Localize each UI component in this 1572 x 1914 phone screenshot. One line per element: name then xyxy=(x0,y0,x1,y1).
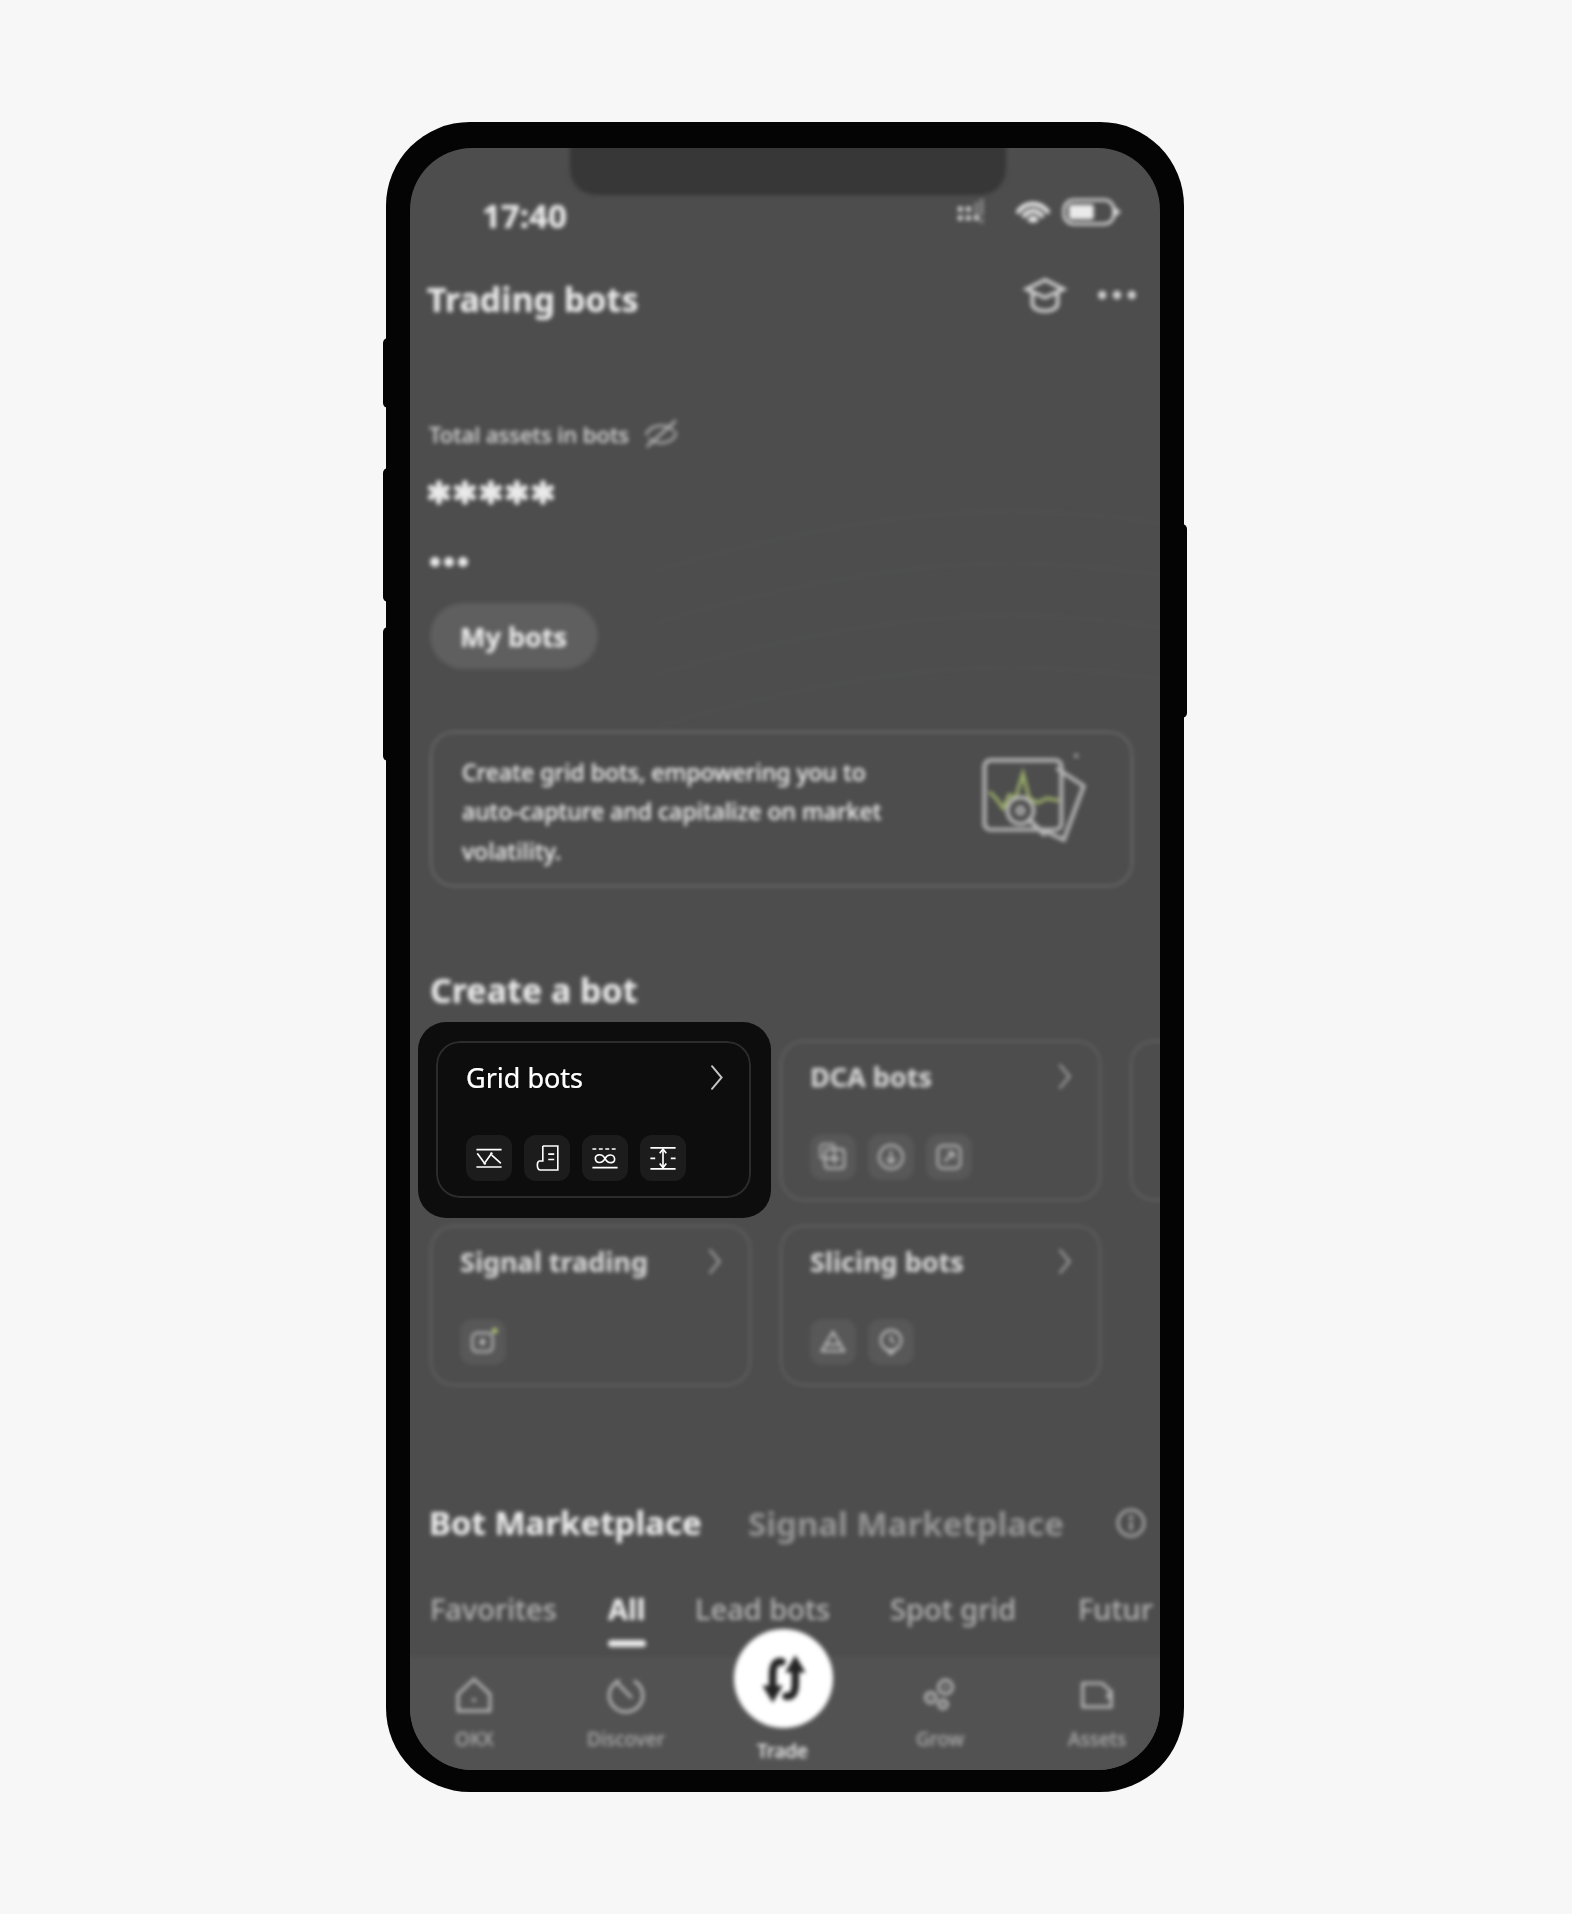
staticText: Signal Marketplace xyxy=(748,1501,1064,1546)
button[interactable]: Signal trading xyxy=(430,1225,751,1386)
staticText: Discover xyxy=(587,1726,665,1752)
staticText: Trading bots xyxy=(427,276,639,322)
staticText: DCA bots xyxy=(810,1058,933,1095)
button[interactable]: All xyxy=(608,1589,646,1647)
button[interactable]: More options xyxy=(1090,268,1144,322)
staticText: Spot grid xyxy=(890,1589,1017,1628)
staticText: Grid bots xyxy=(466,1059,584,1096)
staticText: All xyxy=(608,1589,646,1628)
button[interactable]: Futur xyxy=(1078,1589,1154,1628)
button[interactable]: Bot Marketplace xyxy=(429,1500,702,1545)
button[interactable]: Grid bots xyxy=(430,1040,751,1201)
staticText: Grid bots xyxy=(460,1058,583,1095)
staticText: Bot Marketplace xyxy=(429,1500,702,1545)
button[interactable]: Discover xyxy=(566,1656,686,1770)
staticText: Create grid bots, empowering you to auto… xyxy=(462,756,928,867)
staticText: Total assets in bots xyxy=(429,419,630,449)
staticText: Trade xyxy=(757,1738,808,1764)
staticText: My bots xyxy=(460,618,568,655)
staticText: 17:40 xyxy=(482,193,567,238)
staticText: OKX xyxy=(455,1726,494,1752)
staticText: Grow xyxy=(916,1726,965,1752)
button[interactable]: Trade xyxy=(734,1629,833,1728)
staticText: Assets xyxy=(1068,1726,1127,1752)
button[interactable]: Create grid bots, empowering you to auto… xyxy=(430,731,1133,887)
staticText: Slicing bots xyxy=(810,1243,964,1280)
button[interactable]: Learn xyxy=(1018,268,1072,322)
button[interactable]: Assets xyxy=(1037,1656,1157,1770)
button[interactable]: Spot grid xyxy=(890,1589,1017,1628)
staticText: Favorites xyxy=(430,1589,557,1628)
staticText: Create a bot xyxy=(430,967,638,1013)
button[interactable]: Slicing bots xyxy=(780,1225,1101,1386)
button[interactable]: Signal Marketplace xyxy=(748,1501,1064,1549)
button[interactable]: Grid bots xyxy=(418,1022,771,1218)
button[interactable]: Favorites xyxy=(430,1589,557,1628)
button[interactable]: Toggle balance visibility xyxy=(644,417,678,451)
staticText: Lead bots xyxy=(695,1589,831,1628)
staticText: Futur xyxy=(1078,1589,1154,1628)
button[interactable]: Info xyxy=(1114,1506,1148,1540)
button[interactable]: My bots xyxy=(430,603,598,669)
button[interactable]: Lead bots xyxy=(695,1589,831,1628)
button[interactable]: DCA bots xyxy=(780,1040,1101,1201)
staticText: Signal trading xyxy=(460,1243,648,1280)
button[interactable]: OKX xyxy=(414,1656,534,1770)
button[interactable]: Grow xyxy=(880,1656,1000,1770)
